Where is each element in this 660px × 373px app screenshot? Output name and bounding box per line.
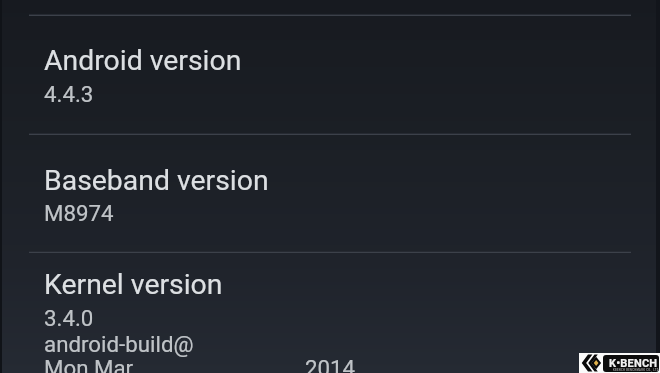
button[interactable]: Android version 4.4.3 [0, 16, 660, 134]
staticText: Android version [44, 44, 242, 77]
button[interactable]: Baseband version M8974 [0, 135, 660, 252]
button[interactable]: Kernel version 3.4.0 [0, 253, 660, 373]
staticText: 3.4.0 [44, 305, 94, 331]
staticText: 4.4.3 [44, 81, 94, 107]
staticText: Baseband version [44, 164, 269, 197]
staticText: K•BENCH [609, 357, 658, 370]
button[interactable]: K-BENCH watermark [579, 353, 660, 373]
staticText: Kernel version [44, 268, 223, 301]
staticText: KBENCH BENCHMARK CO., LTD. [613, 369, 659, 372]
staticText: android-build@ [44, 331, 194, 357]
staticText: 2014 [305, 355, 356, 373]
staticText: Mon Mar [44, 355, 134, 373]
staticText: M8974 [44, 200, 114, 226]
